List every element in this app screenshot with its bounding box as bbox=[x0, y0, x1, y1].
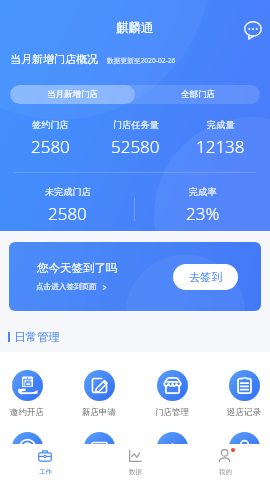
staticText: 全部门店 bbox=[181, 89, 215, 100]
staticText: 新店申请 bbox=[82, 407, 116, 418]
staticText: 52580 bbox=[111, 135, 160, 158]
staticText: 签约门店 bbox=[32, 119, 69, 131]
button[interactable]: Menu item bbox=[141, 432, 203, 469]
button[interactable]: 我的 bbox=[180, 444, 270, 480]
button[interactable]: Menu item bbox=[68, 432, 130, 469]
staticText: 数据更新至2020-02-26 bbox=[107, 56, 176, 65]
staticText: 12138 bbox=[196, 135, 245, 158]
button[interactable]: Menu item bbox=[0, 432, 58, 469]
button[interactable]: Messages bbox=[244, 21, 262, 39]
staticText: 门店管理 bbox=[155, 407, 189, 418]
staticText: 数据 bbox=[129, 468, 142, 476]
staticText: 门店任务量 bbox=[113, 119, 159, 131]
staticText: 麒麟通 bbox=[116, 20, 154, 36]
staticText: 当月新增门店 bbox=[47, 89, 98, 100]
button[interactable]: 邀约开店 bbox=[0, 370, 58, 418]
button[interactable]: 门店管理 bbox=[141, 370, 203, 418]
staticText: 去签到 bbox=[189, 270, 222, 284]
staticText: 我的 bbox=[219, 468, 232, 476]
staticText: 完成率 bbox=[189, 186, 217, 198]
button[interactable]: 新店申请 bbox=[68, 370, 130, 418]
staticText: 当月新增门店概况 bbox=[10, 52, 98, 66]
button[interactable]: 数据 bbox=[90, 444, 180, 480]
staticText: 邀约开店 bbox=[10, 407, 44, 418]
button[interactable]: 全部门店 bbox=[135, 85, 260, 104]
staticText: 23% bbox=[186, 202, 220, 225]
staticText: 巡店记录 bbox=[227, 407, 261, 418]
staticText: 2580 bbox=[48, 202, 87, 225]
staticText: 工作 bbox=[39, 468, 52, 476]
button[interactable]: 工作 bbox=[0, 444, 90, 480]
button[interactable]: 您今天签到了吗 bbox=[9, 242, 261, 311]
staticText: 点击进入签到页面 bbox=[36, 282, 97, 292]
button[interactable]: 巡店记录 bbox=[213, 370, 270, 418]
staticText: 完成量 bbox=[207, 119, 235, 131]
button[interactable]: 当月新增门店 bbox=[10, 85, 135, 104]
staticText: 您今天签到了吗 bbox=[37, 261, 118, 275]
button[interactable]: 去签到 bbox=[173, 264, 238, 290]
staticText: 未完成门店 bbox=[45, 186, 91, 198]
staticText: 2580 bbox=[31, 135, 70, 158]
button[interactable]: Menu item bbox=[213, 432, 270, 469]
staticText: 日常管理 bbox=[14, 330, 60, 344]
